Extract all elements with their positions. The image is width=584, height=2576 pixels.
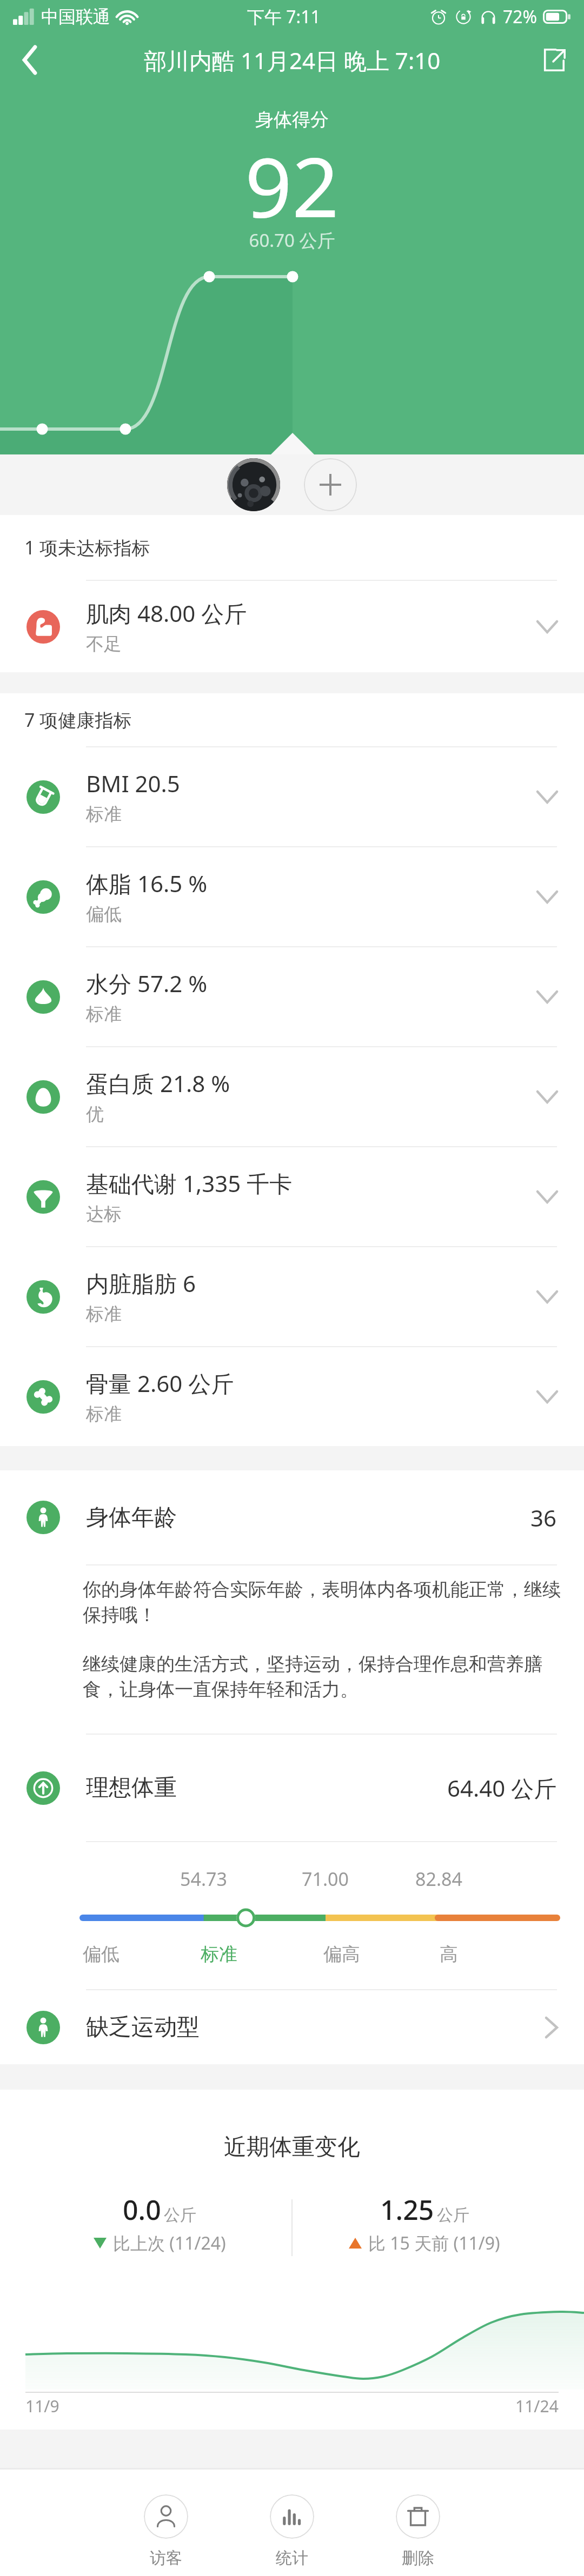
staticText: 部川内酷 11月24日 晚上 7:10 (144, 45, 441, 76)
staticText: 标准 (86, 803, 122, 826)
staticText: 偏低 (86, 903, 122, 926)
button[interactable]: Back (0, 34, 59, 86)
button[interactable]: 访客 (144, 2494, 188, 2568)
button[interactable]: 删除 (396, 2494, 440, 2568)
staticText: 60.70 公斤 (0, 228, 584, 252)
button[interactable]: 基础代谢 1,335 千卡 (0, 1146, 584, 1246)
staticText: 近期体重变化 (0, 2133, 584, 2162)
staticText: 缺乏运动型 (86, 2013, 200, 2042)
button[interactable]: 肌肉 48.00 公斤 (0, 580, 584, 672)
staticText: 7 项健康指标 (24, 707, 132, 732)
staticText: 你的身体年龄符合实际年龄，表明体内各项机能正常，继续保持哦！ (83, 1578, 568, 1627)
staticText: 不足 (86, 633, 122, 655)
staticText: 统计 (276, 2548, 308, 2568)
button[interactable]: 内脏脂肪 6 (0, 1246, 584, 1346)
staticText: 继续健康的生活方式，坚持运动，保持合理作息和营养膳食，让身体一直保持年轻和活力。 (83, 1652, 568, 1701)
staticText: 1 项未达标指标 (24, 535, 150, 560)
staticText: 标准 (86, 1403, 122, 1426)
staticText: 下午 7:11 (247, 5, 321, 29)
button[interactable]: Add (304, 458, 357, 511)
staticText: 达标 (86, 1203, 122, 1226)
staticText: 36 (530, 1502, 557, 1533)
staticText: 优 (86, 1103, 104, 1126)
staticText: 肌肉 48.00 公斤 (86, 598, 247, 628)
staticText: 82.84 (415, 1866, 462, 1891)
button[interactable]: 统计 (270, 2494, 314, 2568)
staticText: 访客 (150, 2548, 182, 2568)
staticText: 1.25 (380, 2191, 434, 2228)
button[interactable]: Profile (227, 458, 280, 511)
staticText: 11/24 (515, 2395, 559, 2417)
staticText: 骨量 2.60 公斤 (86, 1368, 234, 1399)
staticText: 0.0 (123, 2191, 161, 2228)
staticText: 基础代谢 1,335 千卡 (86, 1168, 293, 1199)
button[interactable]: 体脂 16.5 % (0, 846, 584, 946)
staticText: 删除 (402, 2548, 434, 2568)
staticText: BMI 20.5 (86, 768, 180, 799)
button[interactable]: 理想体重 (26, 1735, 557, 1841)
staticText: 92 (0, 130, 584, 242)
staticText: 内脏脂肪 6 (86, 1268, 196, 1299)
staticText: 64.40 公斤 (447, 1772, 557, 1803)
staticText: 比 15 天前 (11/9) (368, 2231, 500, 2255)
staticText: 标准 (86, 1303, 122, 1326)
staticText: 比上次 (11/24) (113, 2231, 226, 2255)
staticText: 体脂 16.5 % (86, 868, 208, 899)
button[interactable]: 蛋白质 21.8 % (0, 1046, 584, 1146)
staticText: 身体得分 (0, 108, 584, 131)
staticText: 身体年龄 (86, 1503, 177, 1532)
staticText: 72% (503, 5, 537, 29)
staticText: 标准 (86, 1003, 122, 1026)
button[interactable]: BMI 20.5 (0, 746, 584, 846)
staticText: 高 (440, 1943, 458, 1966)
staticText: 理想体重 (86, 1774, 177, 1802)
staticText: 蛋白质 21.8 % (86, 1068, 230, 1099)
staticText: 偏高 (323, 1943, 360, 1966)
button[interactable]: 水分 57.2 % (0, 946, 584, 1046)
staticText: 54.73 (180, 1866, 227, 1891)
button[interactable]: 缺乏运动型 (26, 1990, 557, 2064)
staticText: 水分 57.2 % (86, 968, 208, 999)
staticText: 公斤 (164, 2205, 196, 2225)
button[interactable]: 身体年龄 (26, 1470, 557, 1564)
button[interactable]: Share (525, 34, 584, 86)
staticText: 11/9 (25, 2395, 59, 2417)
staticText: 偏低 (83, 1943, 120, 1966)
staticText: 公斤 (437, 2205, 469, 2225)
button[interactable]: 骨量 2.60 公斤 (0, 1346, 584, 1446)
staticText: 标准 (201, 1943, 237, 1966)
staticText: 71.00 (302, 1866, 349, 1891)
staticText: 中国联通 (41, 6, 110, 28)
